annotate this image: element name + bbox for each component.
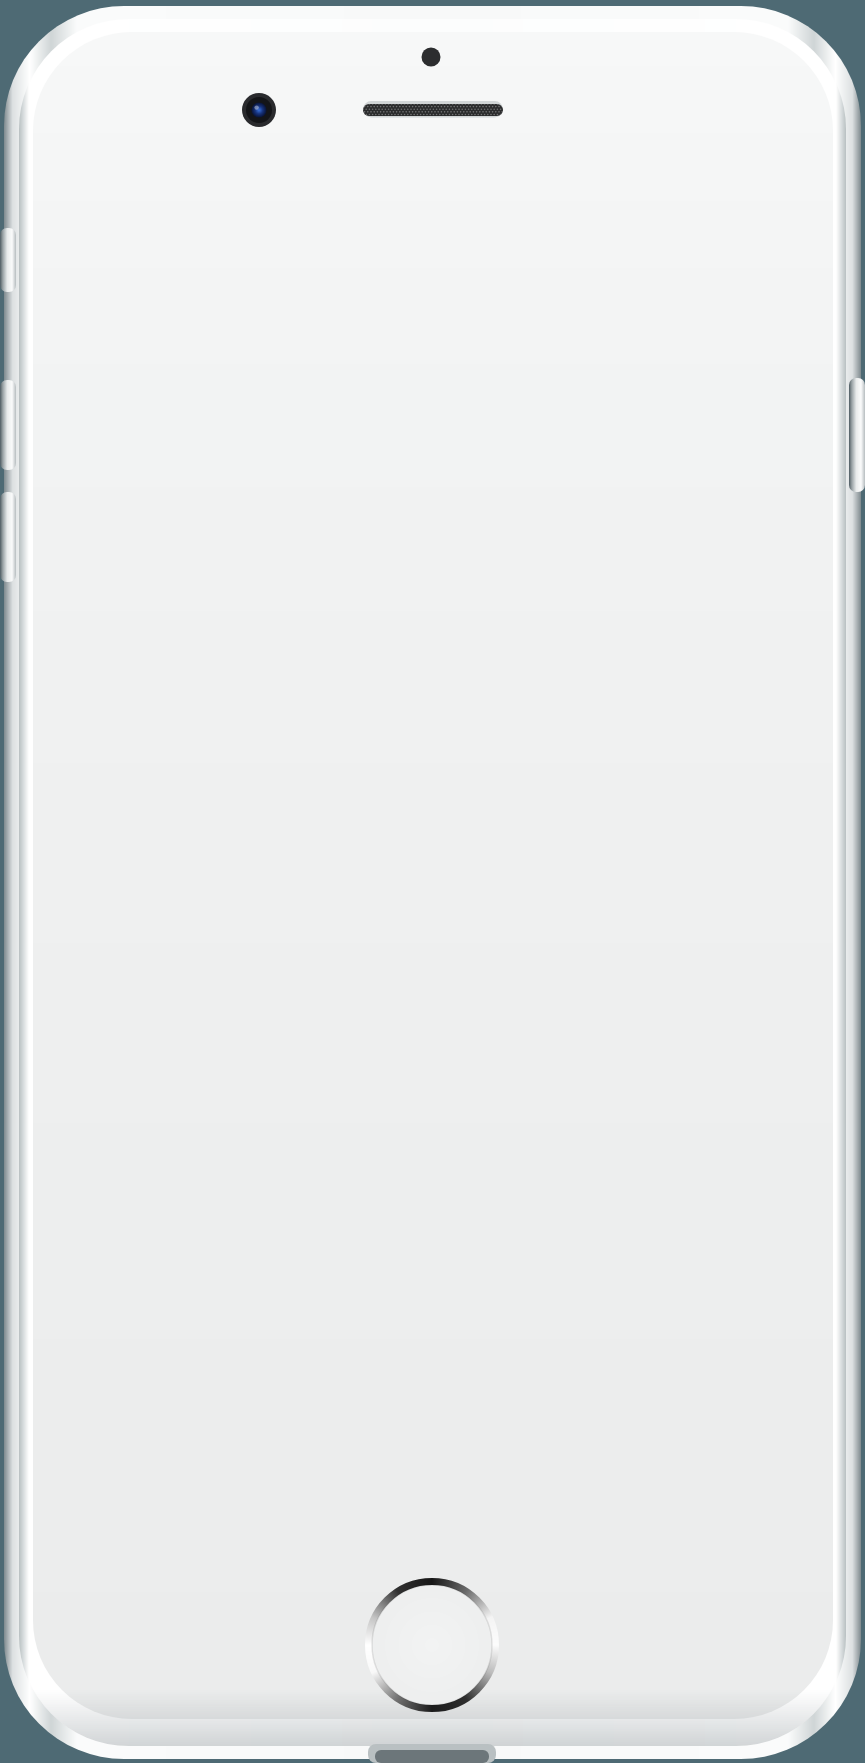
button[interactable]: Ring/Silent switch bbox=[0, 228, 16, 292]
button[interactable]: Volume down bbox=[0, 492, 16, 582]
button[interactable]: Volume up bbox=[0, 380, 16, 470]
button[interactable]: Home bbox=[365, 1578, 499, 1712]
button[interactable]: Power bbox=[849, 378, 865, 492]
